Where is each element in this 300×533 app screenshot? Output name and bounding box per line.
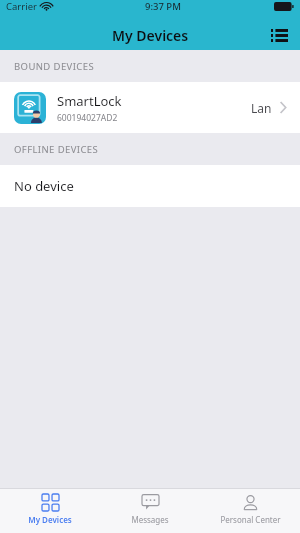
staticText: OFFLINE DEVICES bbox=[14, 143, 99, 156]
staticText: My Devices bbox=[28, 514, 72, 525]
staticText: 9:37 PM bbox=[145, 0, 181, 13]
staticText: No device bbox=[14, 177, 74, 195]
button[interactable]: My Devices bbox=[0, 489, 100, 533]
staticText: Personal Center bbox=[220, 514, 281, 525]
button[interactable]: SmartLock bbox=[0, 82, 300, 133]
staticText: Lan bbox=[251, 100, 272, 116]
staticText: BOUND DEVICES bbox=[14, 60, 95, 73]
staticText: 600194027AD2 bbox=[57, 112, 118, 124]
button[interactable]: Messages bbox=[100, 489, 200, 533]
staticText: Messages bbox=[131, 514, 169, 525]
button[interactable]: Menu bbox=[266, 22, 292, 48]
staticText: Carrier bbox=[6, 0, 37, 13]
button[interactable]: Personal Center bbox=[200, 489, 300, 533]
staticText: SmartLock bbox=[57, 92, 122, 110]
staticText: My Devices bbox=[112, 26, 189, 45]
